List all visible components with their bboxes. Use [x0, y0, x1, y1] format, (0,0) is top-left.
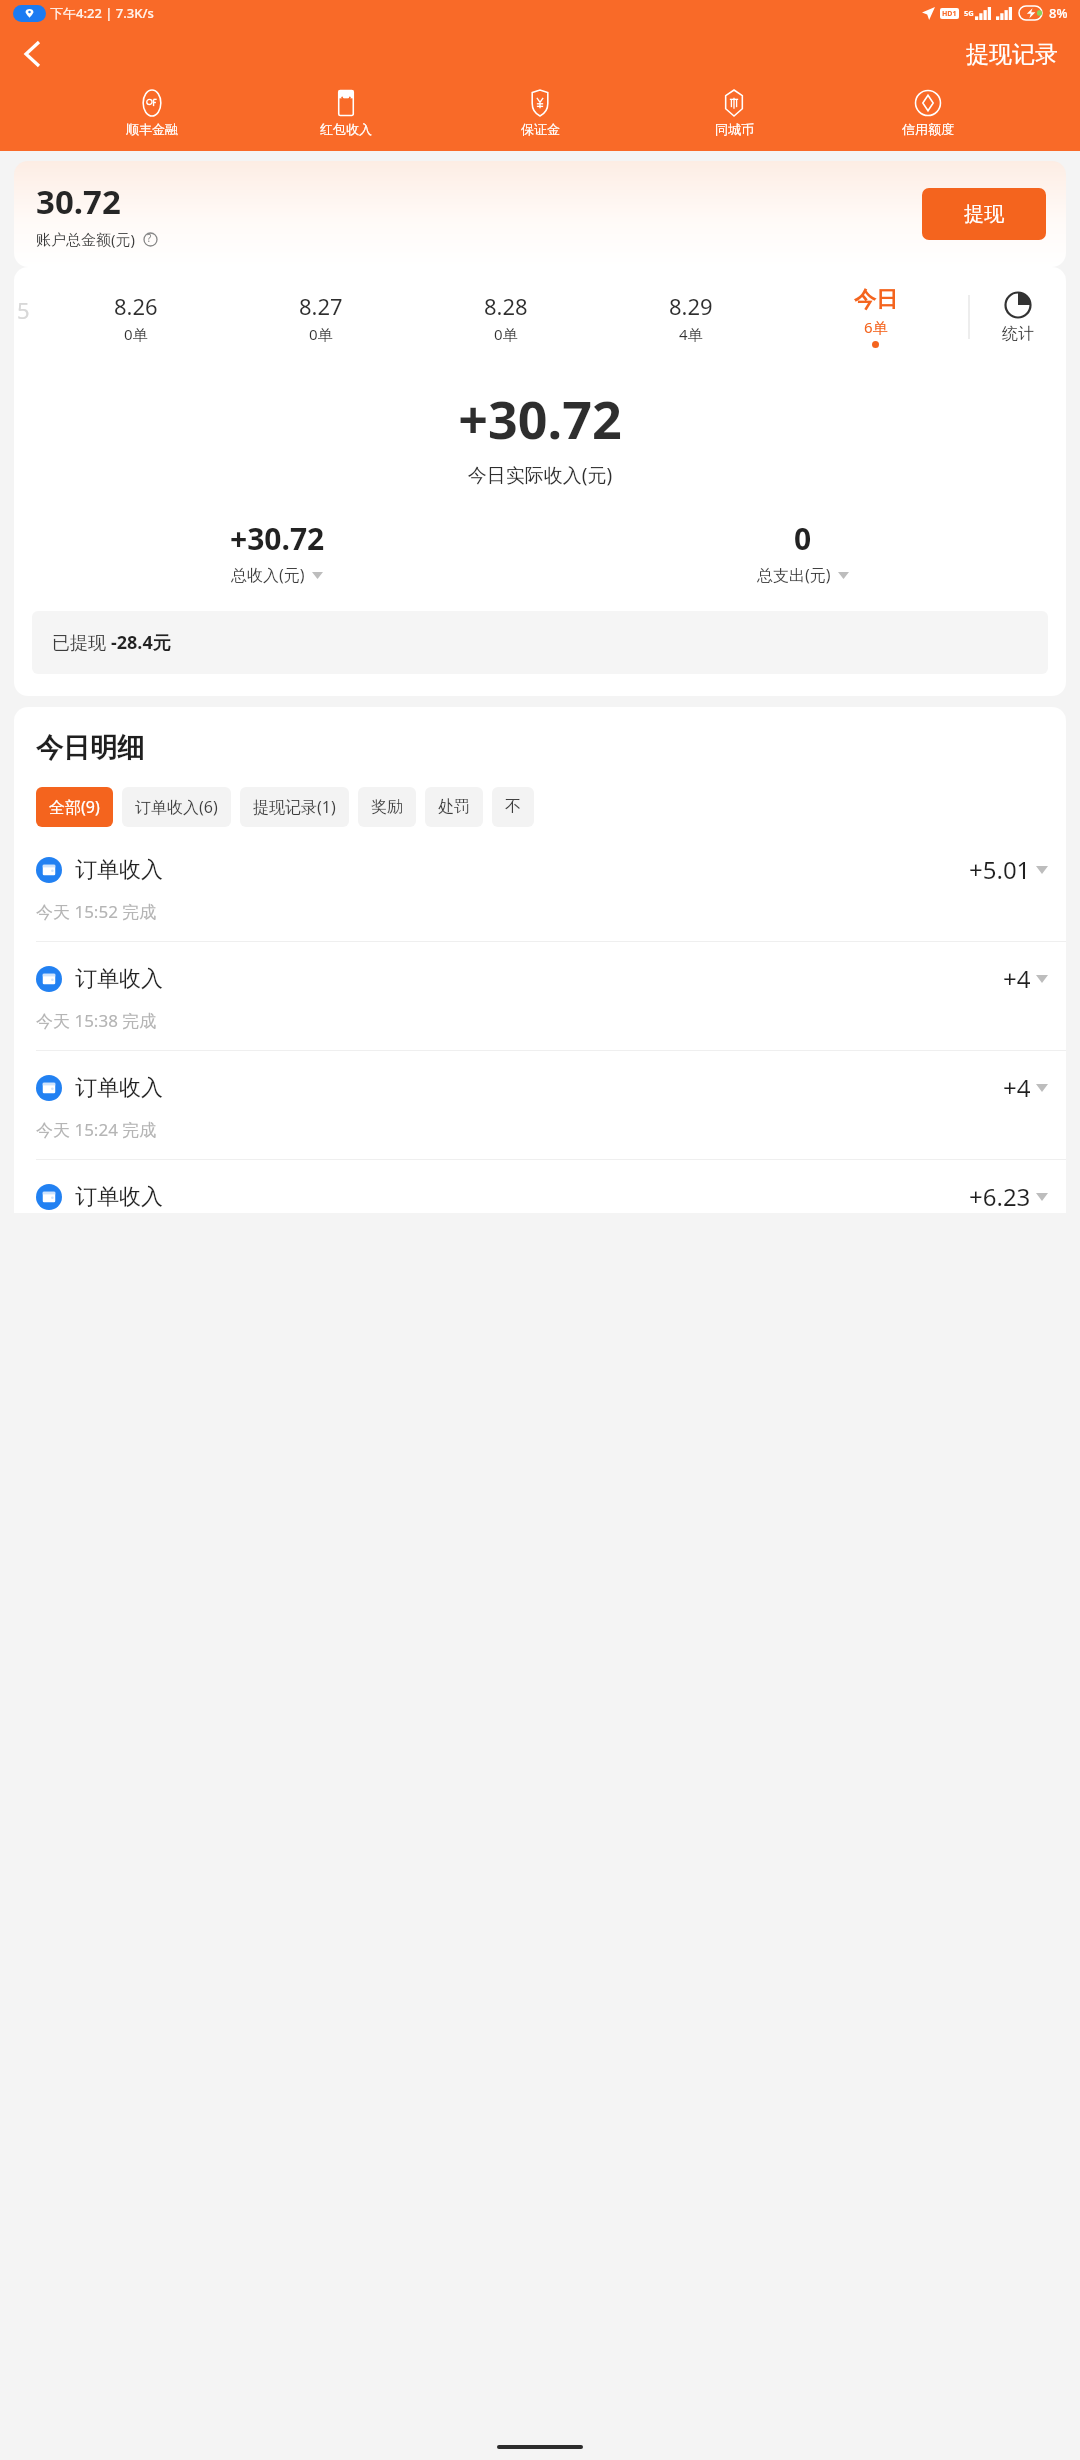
staticText: 8.27	[299, 291, 343, 321]
staticText: 统计	[1002, 324, 1034, 344]
staticText: 提现记录(1)	[253, 796, 336, 818]
staticText: 8.29	[669, 291, 713, 321]
button[interactable]: 不	[492, 787, 534, 827]
staticText: ?	[147, 231, 152, 245]
staticText: 今天 15:52 完成	[36, 900, 157, 923]
button[interactable]: 订单收入(6)	[122, 787, 231, 827]
button[interactable]: 全部(9)	[36, 787, 113, 827]
staticText: +4	[1003, 1071, 1031, 1104]
staticText: 6单	[864, 317, 888, 337]
button[interactable]: 今日	[783, 286, 968, 348]
staticText: HD1	[942, 9, 957, 19]
button[interactable]: 统计	[970, 291, 1066, 344]
staticText: 同城币	[715, 121, 754, 137]
button[interactable]: 8.26	[44, 291, 228, 344]
staticText: +30.72	[14, 383, 1066, 454]
staticText: 8%	[1049, 4, 1068, 22]
staticText: 5G	[964, 8, 974, 18]
staticText: 提现记录	[966, 40, 1058, 69]
button[interactable]: 顺丰金融	[104, 88, 200, 139]
staticText: 30.72	[36, 179, 121, 224]
button[interactable]: 信用额度	[880, 88, 976, 139]
staticText: -28.4元	[111, 630, 171, 655]
button[interactable]: 奖励	[358, 787, 416, 827]
staticText: 今日	[854, 286, 898, 314]
staticText: 订单收入	[75, 965, 163, 993]
staticText: 全部(9)	[49, 796, 100, 818]
staticText: 今天 15:24 完成	[36, 1118, 157, 1141]
button[interactable]: 保证金	[492, 88, 588, 139]
button[interactable]: 30.72	[14, 161, 1066, 267]
staticText: 已提现	[52, 630, 111, 655]
staticText: 0单	[494, 324, 518, 344]
button[interactable]: 提现	[922, 188, 1046, 240]
staticText: 0单	[309, 324, 333, 344]
staticText: 8.28	[484, 291, 528, 321]
staticText: 总支出(元)	[757, 564, 831, 586]
button[interactable]: 8.28	[413, 291, 598, 344]
staticText: 订单收入(6)	[135, 796, 218, 818]
staticText: 提现	[964, 202, 1004, 227]
button[interactable]: 同城币	[686, 88, 782, 139]
staticText: 处罚	[438, 797, 470, 817]
button[interactable]: 提现记录(1)	[240, 787, 349, 827]
button[interactable]: 8.29	[598, 291, 783, 344]
button[interactable]: 红包收入	[298, 88, 394, 139]
staticText: 0	[794, 518, 812, 559]
button[interactable]: 8.27	[228, 291, 413, 344]
button[interactable]: 订单收入	[14, 962, 1066, 1071]
staticText: +6.23	[969, 1180, 1031, 1213]
button[interactable]: 订单收入	[14, 1071, 1066, 1180]
staticText: 奖励	[371, 797, 403, 817]
staticText: +5.01	[969, 853, 1031, 886]
button[interactable]: 订单收入	[14, 853, 1066, 962]
staticText: 今日实际收入(元)	[14, 462, 1066, 488]
button[interactable]: 订单收入	[14, 1180, 1066, 1213]
staticText: +30.72	[230, 518, 325, 559]
staticText: 今日明细	[36, 731, 144, 765]
staticText: 顺丰金融	[126, 121, 178, 137]
staticText: 今天 15:38 完成	[36, 1009, 157, 1032]
staticText: 不	[505, 797, 521, 817]
button[interactable]: 返回	[8, 30, 56, 78]
button[interactable]: 已提现	[32, 611, 1048, 674]
staticText: 下午4:22 | 7.3K/s	[50, 4, 154, 22]
staticText: 订单收入	[75, 856, 163, 884]
staticText: 订单收入	[75, 1074, 163, 1102]
staticText: 信用额度	[902, 121, 954, 137]
staticText: 订单收入	[75, 1183, 163, 1211]
staticText: 保证金	[521, 121, 560, 137]
staticText: 红包收入	[320, 121, 372, 137]
staticText: 总收入(元)	[231, 564, 305, 586]
staticText: 8.26	[114, 291, 158, 321]
button[interactable]: 处罚	[425, 787, 483, 827]
button[interactable]: +30.72	[14, 518, 540, 586]
staticText: 账户总金额(元)	[36, 229, 136, 249]
staticText: 0单	[124, 324, 148, 344]
staticText: +4	[1003, 962, 1031, 995]
button[interactable]: 0	[540, 518, 1066, 586]
staticText: 5	[17, 295, 30, 325]
staticText: 4单	[679, 324, 703, 344]
